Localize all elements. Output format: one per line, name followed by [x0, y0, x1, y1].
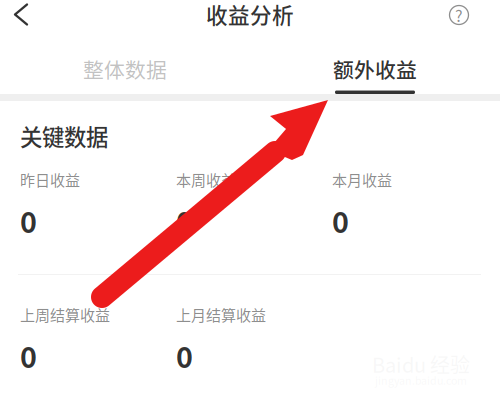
button[interactable]: 额外收益 — [250, 36, 500, 94]
staticText: 本周收益 — [176, 169, 236, 190]
button[interactable]: Back — [0, 0, 44, 39]
staticText: 收益分析 — [206, 0, 294, 30]
staticText: ? — [455, 3, 463, 27]
staticText: 0 — [20, 335, 37, 376]
staticText: 0 — [20, 200, 37, 241]
staticText: 本月收益 — [332, 169, 392, 190]
staticText: 关键数据 — [20, 120, 108, 152]
staticText: 0 — [176, 335, 193, 376]
staticText: 额外收益 — [333, 54, 417, 84]
staticText: 0 — [176, 200, 193, 241]
staticText: 上月结算收益 — [176, 304, 266, 325]
staticText: 整体数据 — [83, 54, 167, 84]
staticText: 上周结算收益 — [20, 304, 110, 325]
staticText: 昨日收益 — [20, 169, 80, 190]
button[interactable]: Help — [437, 0, 481, 39]
staticText: 0 — [332, 200, 349, 241]
button[interactable]: 整体数据 — [0, 36, 250, 94]
